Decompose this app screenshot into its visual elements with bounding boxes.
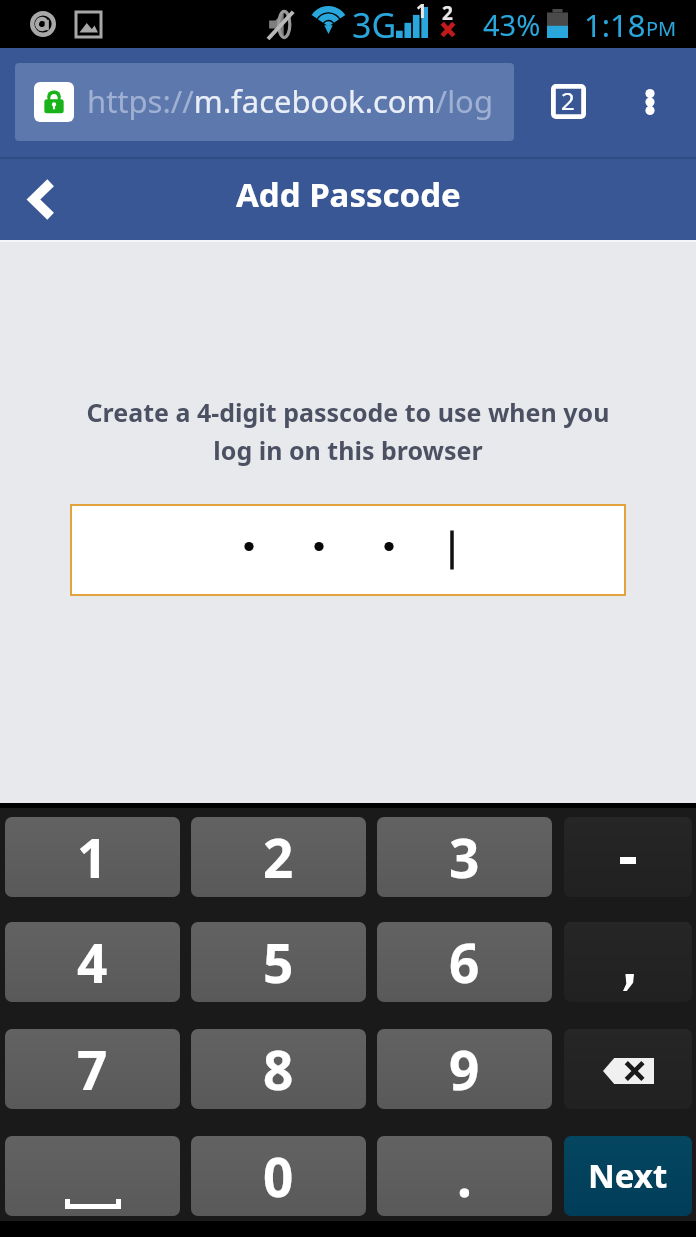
button[interactable]: 4 <box>5 922 180 1002</box>
staticText: 2 <box>442 0 453 26</box>
button[interactable]: 8 <box>191 1029 366 1109</box>
button[interactable]: Back <box>0 157 83 242</box>
button[interactable] <box>70 504 626 596</box>
button[interactable]: 0 <box>191 1136 366 1216</box>
button[interactable]: Space <box>5 1136 180 1216</box>
button[interactable] <box>564 817 692 897</box>
button[interactable]: More options <box>620 62 680 140</box>
button[interactable]: Backspace <box>564 1029 692 1109</box>
button[interactable]: Next <box>564 1136 692 1216</box>
staticText: 7 <box>77 1033 108 1105</box>
staticText: 2 <box>263 821 294 893</box>
staticText: 3G <box>352 2 397 48</box>
staticText: 9 <box>449 1033 480 1105</box>
staticText: https://m.facebook.com/log <box>87 80 493 122</box>
staticText: 1 <box>77 821 108 893</box>
staticText: Create a 4-digit passcode to use when yo… <box>30 395 666 467</box>
button[interactable]: 7 <box>5 1029 180 1109</box>
staticText: 2 <box>561 84 575 117</box>
staticText: Add Passcode <box>236 172 461 217</box>
button[interactable]: 5 <box>191 922 366 1002</box>
button[interactable]: Tabs <box>533 62 603 140</box>
staticText: 5 <box>263 926 294 998</box>
button[interactable]: 1 <box>5 817 180 897</box>
staticText: 8 <box>263 1033 294 1105</box>
button[interactable] <box>564 922 692 1002</box>
staticText: 4 <box>77 926 108 998</box>
staticText: PM <box>646 15 677 42</box>
button[interactable]: 3 <box>377 817 552 897</box>
button[interactable]: 2 <box>191 817 366 897</box>
staticText: 1 <box>416 0 427 24</box>
staticText: 0 <box>263 1140 294 1212</box>
staticText: 43% <box>483 5 541 44</box>
staticText: . <box>457 1140 472 1212</box>
staticText: 3 <box>449 821 480 893</box>
button[interactable]: 9 <box>377 1029 552 1109</box>
button[interactable]: https://m.facebook.com/log <box>15 63 514 141</box>
staticText: Next <box>588 1153 668 1198</box>
button[interactable]: . <box>377 1136 552 1216</box>
button[interactable]: 6 <box>377 922 552 1002</box>
staticText: 1:18 <box>584 4 646 46</box>
staticText: 6 <box>449 926 480 998</box>
